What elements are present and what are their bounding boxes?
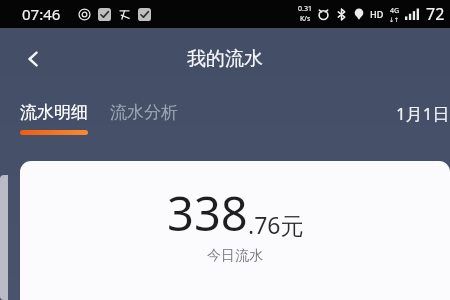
staticText: 07:46 bbox=[22, 4, 61, 24]
staticText: 流水明细 bbox=[20, 102, 88, 123]
button[interactable]: 流水明细 bbox=[20, 102, 88, 123]
staticText: 1月1日 bbox=[396, 102, 450, 125]
staticText: 338 bbox=[167, 181, 248, 245]
staticText: 0.31 bbox=[298, 4, 312, 14]
staticText: 流水分析 bbox=[110, 102, 178, 123]
button[interactable]: 流水分析 bbox=[110, 102, 178, 123]
staticText: .76元 bbox=[248, 209, 304, 240]
button[interactable]: 338 bbox=[20, 161, 450, 300]
staticText: HD bbox=[370, 8, 384, 20]
staticText: K/s bbox=[300, 14, 311, 24]
staticText: 4G bbox=[390, 6, 400, 16]
staticText: 今日流水 bbox=[207, 247, 263, 265]
staticText: 72 bbox=[426, 3, 445, 25]
staticText: 我的流水 bbox=[187, 47, 263, 71]
staticText: ↓↑ bbox=[389, 16, 400, 23]
button[interactable]: Back bbox=[10, 36, 56, 82]
button[interactable]: 1月1日 bbox=[396, 102, 450, 125]
